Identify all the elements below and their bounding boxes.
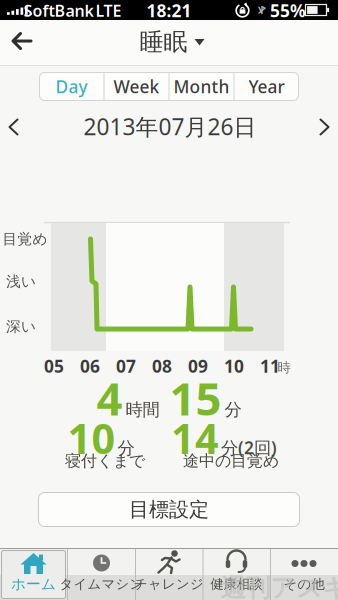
staticText: タイムマシン [59,576,143,592]
button[interactable]: Back [10,30,34,51]
button[interactable]: チャレンジ [135,550,202,599]
button[interactable]: Week [104,72,168,100]
staticText: SoftBank [23,0,93,21]
button[interactable]: タイムマシン [68,550,135,599]
staticText: 時 [277,359,290,376]
staticText: 10 [67,411,115,465]
staticText: 週刊アスキー [220,572,338,600]
staticText: ホーム [11,575,56,593]
staticText: LTE [95,0,121,21]
staticText: 時間 [125,399,159,420]
staticText: Year [248,75,284,98]
staticText: 08 [152,354,172,377]
staticText: 11 [260,354,280,377]
staticText: チャレンジ [134,576,204,592]
staticText: Day [55,75,87,98]
staticText: 10 [224,354,244,377]
staticText: 14 [171,411,219,465]
staticText: 目覚め [2,230,47,248]
staticText: 分(2回) [221,436,277,459]
staticText: 18:21 [146,0,191,22]
staticText: Month [173,75,229,98]
staticText: 09 [188,354,208,377]
button[interactable]: Day [39,72,103,100]
staticText: 浅い [6,272,36,290]
staticText: 深い [6,317,36,335]
staticText: 途中の目覚め [183,451,279,471]
button[interactable]: 健康相談 [203,550,270,599]
button[interactable]: 目標設定 [38,492,300,527]
button[interactable]: Previous day [8,118,20,136]
staticText: Week [113,75,159,98]
staticText: 05 [44,354,64,377]
staticText: 目標設定 [129,497,209,522]
staticText: 07 [116,354,136,377]
staticText: 4 [96,368,122,428]
button[interactable]: ホーム [1,550,66,599]
staticText: 55% [270,0,306,22]
staticText: 分 [224,399,241,420]
staticText: 健康相談 [210,576,262,592]
staticText: 分 [117,438,134,459]
button[interactable]: Next day [318,118,330,136]
staticText: 睡眠 [139,27,187,57]
button[interactable]: 睡眠 [139,27,204,57]
button[interactable]: その他 [270,550,337,599]
staticText: 2013年07月26日 [83,111,256,141]
staticText: 寝付くまで [65,451,145,471]
staticText: 06 [80,354,100,377]
staticText: その他 [283,576,324,592]
staticText: 15 [169,368,221,428]
button[interactable]: Month [169,72,233,100]
button[interactable]: Year [234,72,298,100]
